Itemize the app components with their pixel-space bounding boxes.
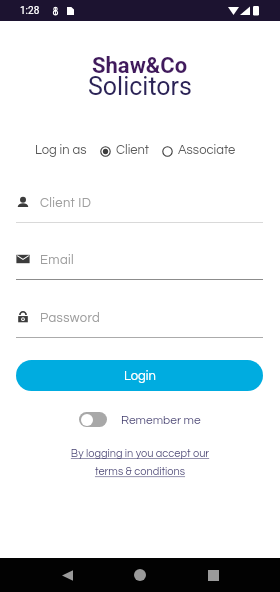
staticText: Remember me [121, 414, 201, 426]
staticText: Login [124, 369, 156, 382]
button[interactable]: Recent apps [200, 562, 226, 588]
button[interactable]: By logging in you accept our terms & con… [0, 448, 280, 478]
button[interactable] [79, 412, 107, 427]
staticText: Password [40, 311, 101, 324]
staticText: Shaw&Co [92, 53, 188, 79]
staticText: 1:28 [20, 5, 40, 17]
button[interactable]: Password [17, 305, 263, 329]
staticText: Client [116, 143, 149, 156]
staticText: Associate [178, 143, 236, 156]
button[interactable]: Back [54, 562, 80, 588]
staticText: Solicitors [88, 72, 192, 101]
button[interactable]: Login [16, 360, 263, 391]
button[interactable]: Associate [162, 143, 236, 156]
staticText: Email [40, 253, 75, 266]
button[interactable]: Email [17, 247, 263, 271]
button[interactable]: Client ID [17, 190, 263, 214]
staticText: Client ID [40, 196, 92, 209]
staticText: Log in as [35, 143, 87, 156]
button[interactable]: Client [100, 143, 149, 156]
button[interactable]: Home [127, 562, 153, 588]
